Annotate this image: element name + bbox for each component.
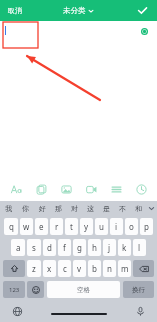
button[interactable]: b bbox=[88, 260, 101, 277]
staticText: x bbox=[47, 263, 52, 274]
staticText: s bbox=[32, 242, 36, 253]
button[interactable]: Text format bbox=[5, 178, 27, 200]
staticText: 123 bbox=[9, 286, 20, 294]
staticText: o bbox=[129, 221, 134, 232]
button[interactable]: u bbox=[95, 218, 108, 235]
button[interactable]: Backspace bbox=[133, 260, 154, 277]
button[interactable]: Image bbox=[55, 178, 77, 200]
button[interactable]: d bbox=[43, 239, 56, 256]
button[interactable]: y bbox=[80, 218, 93, 235]
button[interactable]: w bbox=[20, 218, 33, 235]
staticText: l bbox=[138, 242, 141, 253]
button[interactable]: Voice input bbox=[133, 304, 147, 318]
button[interactable]: f bbox=[58, 239, 71, 256]
staticText: 对 bbox=[71, 204, 78, 213]
staticText: b bbox=[92, 263, 97, 274]
button[interactable]: 空格 bbox=[47, 281, 120, 298]
staticText: 换行 bbox=[132, 286, 145, 294]
staticText: 和 bbox=[135, 204, 142, 213]
button[interactable]: a bbox=[11, 239, 25, 256]
staticText: v bbox=[77, 263, 82, 274]
button[interactable]: 你 bbox=[17, 201, 34, 216]
button[interactable]: x bbox=[43, 260, 56, 277]
staticText: q bbox=[9, 221, 14, 232]
staticText: 好 bbox=[39, 204, 46, 213]
staticText: z bbox=[32, 263, 36, 274]
staticText: n bbox=[107, 263, 112, 274]
staticText: 是 bbox=[103, 204, 110, 213]
button[interactable]: Save bbox=[134, 3, 151, 18]
button[interactable]: Shift bbox=[3, 260, 25, 277]
button[interactable]: m bbox=[118, 260, 131, 277]
staticText: u bbox=[99, 221, 104, 232]
button[interactable]: s bbox=[27, 239, 41, 256]
button[interactable]: 这 bbox=[82, 201, 98, 216]
staticText: r bbox=[55, 221, 59, 232]
button[interactable]: z bbox=[27, 260, 41, 277]
staticText: 你 bbox=[22, 204, 29, 213]
button[interactable]: v bbox=[73, 260, 86, 277]
button[interactable]: Video bbox=[80, 178, 102, 200]
button[interactable]: j bbox=[103, 239, 116, 256]
button[interactable]: 123 bbox=[3, 281, 25, 298]
button[interactable]: 是 bbox=[98, 201, 114, 216]
button[interactable]: 我 bbox=[0, 201, 17, 216]
button[interactable]: More candidates bbox=[146, 201, 157, 216]
button[interactable]: Emoji bbox=[27, 281, 44, 298]
staticText: 那 bbox=[55, 204, 62, 213]
staticText: a bbox=[16, 242, 21, 253]
staticText: m bbox=[121, 263, 129, 274]
staticText: 空格 bbox=[77, 286, 90, 294]
button[interactable]: r bbox=[50, 218, 63, 235]
button[interactable]: t bbox=[65, 218, 78, 235]
staticText: 取消 bbox=[8, 6, 22, 15]
staticText: 不 bbox=[119, 204, 126, 213]
button[interactable]: h bbox=[88, 239, 101, 256]
button[interactable]: e bbox=[35, 218, 48, 235]
staticText: k bbox=[122, 242, 127, 253]
staticText: c bbox=[63, 263, 67, 274]
button[interactable]: p bbox=[140, 218, 153, 235]
button[interactable]: Switch keyboard bbox=[10, 304, 24, 318]
staticText: d bbox=[47, 242, 52, 253]
button[interactable]: 换行 bbox=[123, 281, 154, 298]
button[interactable]: c bbox=[58, 260, 71, 277]
staticText: 我 bbox=[5, 204, 12, 213]
staticText: g bbox=[77, 242, 82, 253]
staticText: i bbox=[115, 221, 118, 232]
staticText: f bbox=[63, 242, 66, 253]
staticText: p bbox=[144, 221, 149, 232]
button[interactable]: i bbox=[110, 218, 123, 235]
button[interactable]: q bbox=[4, 218, 18, 235]
button[interactable]: Reminder bbox=[130, 178, 152, 200]
button[interactable]: Voice note bbox=[139, 26, 149, 36]
button[interactable]: g bbox=[73, 239, 86, 256]
button[interactable]: o bbox=[125, 218, 138, 235]
button[interactable]: 对 bbox=[66, 201, 82, 216]
button[interactable]: Checklist bbox=[105, 178, 127, 200]
staticText: e bbox=[39, 221, 44, 232]
button[interactable]: 好 bbox=[34, 201, 50, 216]
button[interactable]: 不 bbox=[114, 201, 130, 216]
button[interactable]: k bbox=[118, 239, 131, 256]
staticText: h bbox=[92, 242, 97, 253]
button[interactable]: n bbox=[103, 260, 116, 277]
staticText: y bbox=[84, 221, 89, 232]
staticText: 这 bbox=[87, 204, 94, 213]
button[interactable]: 和 bbox=[130, 201, 146, 216]
button[interactable]: 未分类 bbox=[60, 3, 97, 18]
button[interactable]: 那 bbox=[50, 201, 66, 216]
button[interactable]: Note bbox=[30, 178, 52, 200]
staticText: j bbox=[108, 242, 111, 253]
staticText: 未分类 bbox=[63, 6, 86, 15]
staticText: t bbox=[70, 221, 73, 232]
staticText: w bbox=[23, 221, 30, 232]
button[interactable]: l bbox=[133, 239, 146, 256]
button[interactable]: 取消 bbox=[6, 3, 24, 18]
